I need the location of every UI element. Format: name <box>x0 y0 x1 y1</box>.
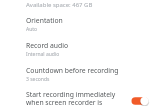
button[interactable]: Record audio <box>0 39 158 64</box>
staticText: Orientation <box>26 16 63 25</box>
staticText: Auto <box>26 26 38 33</box>
button[interactable]: Orientation <box>0 14 158 39</box>
button[interactable]: Start recording immediately toggle <box>132 95 154 106</box>
staticText: 3 seconds <box>26 76 50 83</box>
button[interactable]: Start recording immediately when screen … <box>0 89 158 106</box>
staticText: Countdown before recording <box>26 66 119 75</box>
staticText: Available space: 467 GB <box>26 1 93 9</box>
staticText: Record audio <box>26 41 69 50</box>
staticText: Start recording immediately when screen … <box>26 90 121 106</box>
staticText: Internal audio <box>26 51 60 58</box>
button[interactable]: Countdown before recording <box>0 64 158 89</box>
